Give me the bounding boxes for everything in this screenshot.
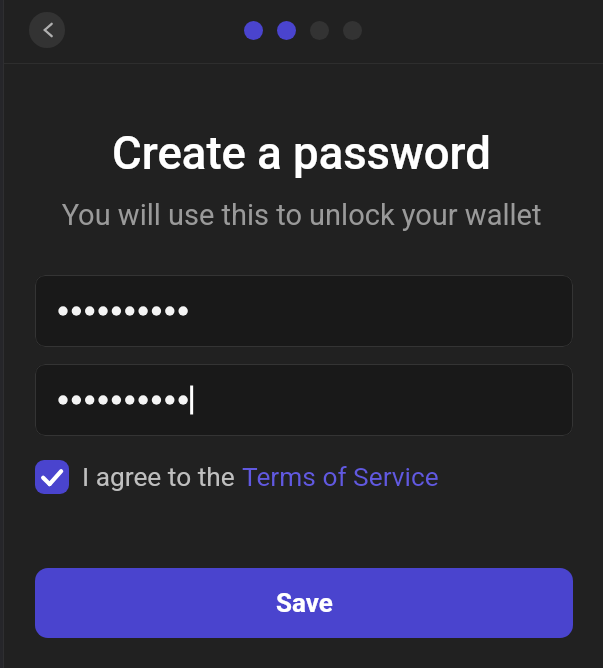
- button[interactable]: Terms of Service: [242, 462, 439, 493]
- staticText: I agree to the: [82, 462, 242, 493]
- button[interactable]: [35, 275, 573, 347]
- staticText: Create a password: [0, 127, 603, 180]
- button[interactable]: Save: [35, 568, 573, 638]
- button[interactable]: [35, 364, 573, 436]
- button[interactable]: I agree to the: [35, 460, 439, 494]
- staticText: You will use this to unlock your wallet: [0, 198, 603, 232]
- staticText: Save: [276, 588, 333, 618]
- button[interactable]: Back: [29, 12, 65, 48]
